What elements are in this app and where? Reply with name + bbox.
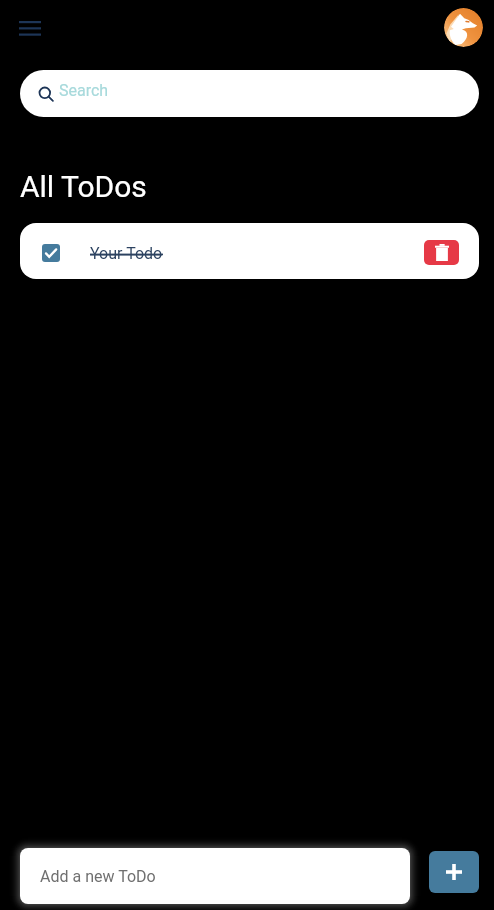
button[interactable]: Menu: [9, 11, 51, 45]
button[interactable]: Mark as done: [42, 244, 60, 262]
staticText: Search: [59, 81, 109, 100]
staticText: Add a new ToDo: [40, 867, 156, 886]
button[interactable]: Add todo: [429, 851, 479, 893]
button[interactable]: Add a new ToDo: [20, 848, 410, 904]
button[interactable]: Search: [20, 70, 479, 117]
button[interactable]: Mark as done: [20, 223, 479, 279]
button[interactable]: Profile: [444, 8, 483, 47]
staticText: Your Todo: [90, 244, 163, 263]
button[interactable]: Delete: [424, 240, 459, 265]
staticText: All ToDos: [20, 169, 147, 204]
